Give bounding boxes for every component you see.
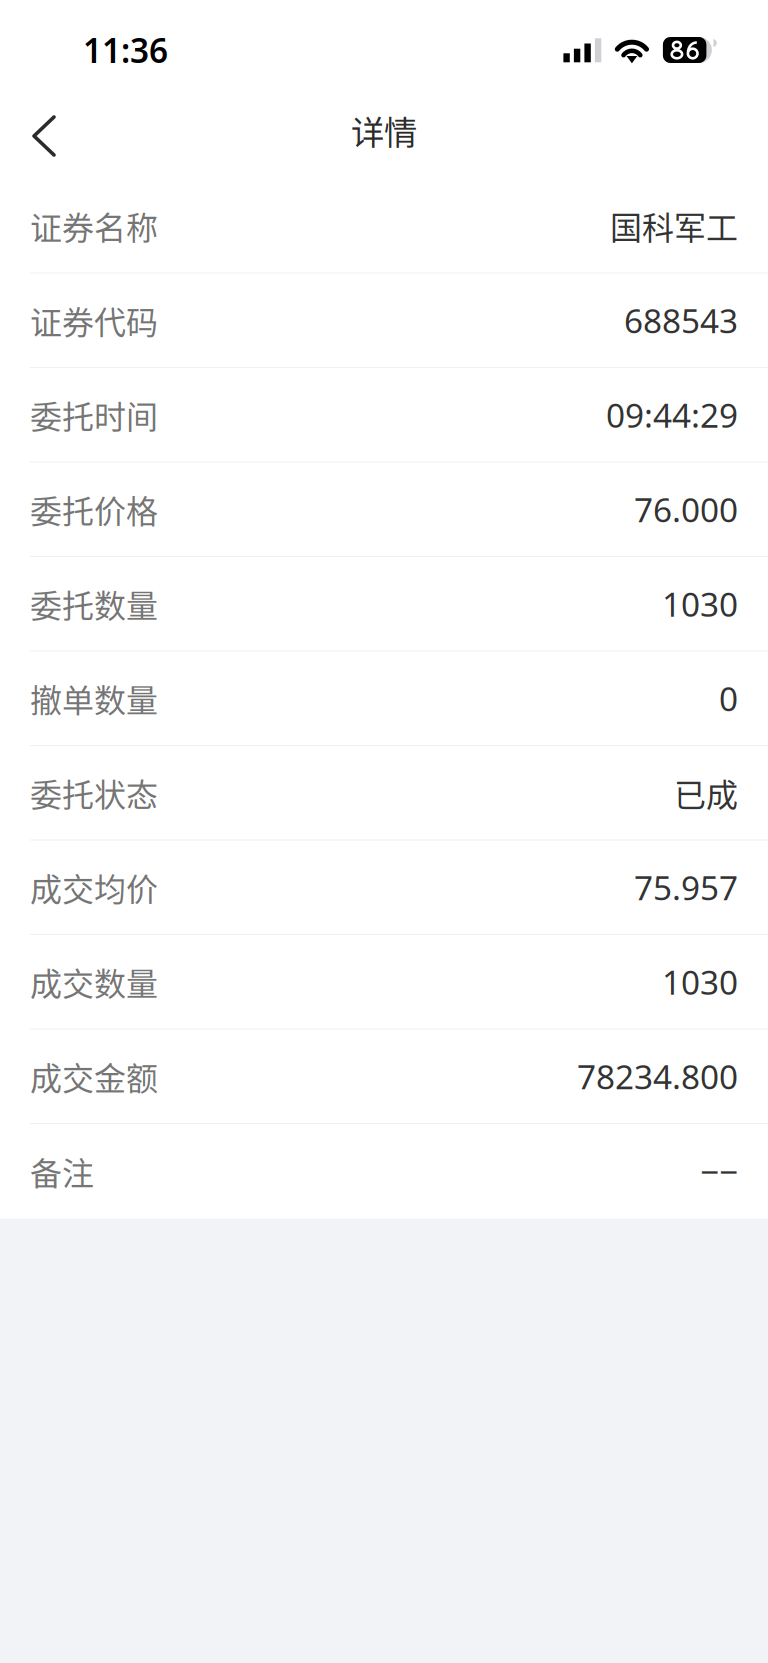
staticText: 委托时间 (30, 392, 158, 438)
staticText: 成交金额 (30, 1053, 158, 1099)
button[interactable]: Back (10, 104, 74, 164)
staticText: 备注 (30, 1148, 94, 1194)
staticText: 09:44:29 (606, 393, 738, 437)
staticText: 0 (719, 676, 738, 720)
staticText: 78234.800 (577, 1054, 738, 1098)
staticText: 76.000 (634, 487, 738, 531)
staticText: 11:36 (83, 28, 168, 72)
staticText: 证券代码 (30, 297, 158, 343)
staticText: 75.957 (634, 865, 738, 909)
staticText: 国科军工 (610, 203, 738, 249)
staticText: −− (700, 1149, 738, 1193)
staticText: 撤单数量 (30, 675, 158, 721)
staticText: 委托数量 (30, 581, 158, 627)
staticText: 证券名称 (30, 203, 158, 249)
staticText: 委托状态 (30, 770, 158, 816)
staticText: 委托价格 (30, 486, 158, 532)
staticText: 1030 (662, 582, 738, 626)
staticText: 已成 (674, 770, 738, 816)
staticText: 成交均价 (30, 864, 158, 910)
staticText: 688543 (624, 298, 738, 342)
staticText: 详情 (351, 106, 417, 154)
staticText: 成交数量 (30, 959, 158, 1005)
staticText: 1030 (662, 960, 738, 1004)
